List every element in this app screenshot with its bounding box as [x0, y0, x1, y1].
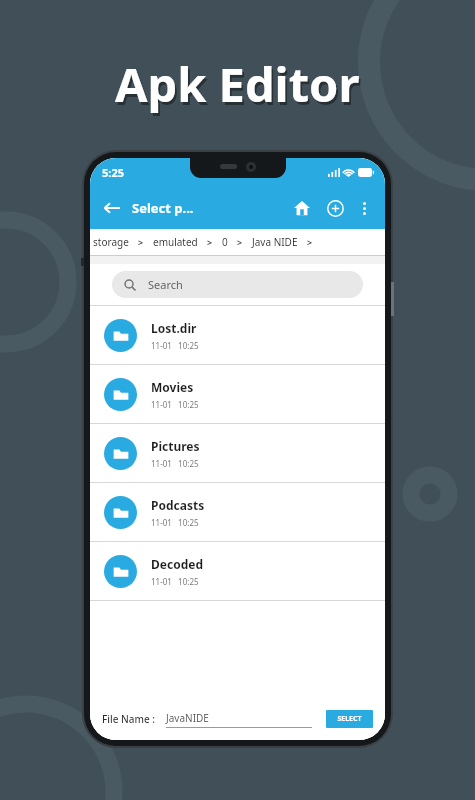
staticText: Pictures — [151, 438, 200, 454]
staticText: > — [138, 236, 144, 248]
button[interactable]: SELECT — [326, 710, 373, 728]
button[interactable]: emulated — [144, 235, 207, 249]
staticText: > — [237, 236, 243, 248]
button[interactable]: Add — [322, 195, 348, 221]
button[interactable]: Lost.dir — [90, 306, 385, 364]
staticText: 11-01 10:25 — [151, 576, 199, 587]
button[interactable]: Back — [100, 196, 124, 220]
staticText: 11-01 10:25 — [151, 517, 199, 528]
staticText: Decoded — [151, 556, 203, 572]
staticText: SELECT — [337, 714, 362, 724]
staticText: Apk Editor — [117, 55, 362, 119]
staticText: 11-01 10:25 — [151, 340, 199, 351]
staticText: 5:25 — [102, 165, 124, 180]
staticText: storage — [93, 235, 129, 249]
staticText: emulated — [153, 235, 198, 249]
staticText: 0 — [222, 235, 228, 249]
staticText: 11-01 10:25 — [151, 399, 199, 410]
button[interactable]: Movies — [90, 365, 385, 423]
staticText: Lost.dir — [151, 320, 197, 336]
staticText: > — [207, 236, 213, 248]
button[interactable]: Java NIDE — [243, 235, 307, 249]
staticText: Select p... — [132, 199, 194, 217]
button[interactable]: 0 — [213, 235, 237, 249]
staticText: Podcasts — [151, 497, 205, 513]
staticText: Java NIDE — [252, 235, 298, 249]
button[interactable]: Decoded — [90, 542, 385, 600]
button[interactable]: Search — [112, 271, 363, 298]
staticText: File Name : — [102, 712, 156, 726]
staticText: 11-01 10:25 — [151, 458, 199, 469]
staticText: Movies — [151, 379, 194, 395]
staticText: JavaNIDE — [166, 711, 209, 725]
button[interactable]: More options — [353, 197, 375, 219]
button[interactable]: Podcasts — [90, 483, 385, 541]
staticText: Search — [148, 277, 183, 292]
staticText: > — [307, 236, 313, 248]
button[interactable]: Pictures — [90, 424, 385, 482]
button[interactable]: Home — [289, 195, 315, 221]
staticText: Apk Editor — [115, 52, 360, 116]
button[interactable]: storage — [90, 235, 138, 249]
